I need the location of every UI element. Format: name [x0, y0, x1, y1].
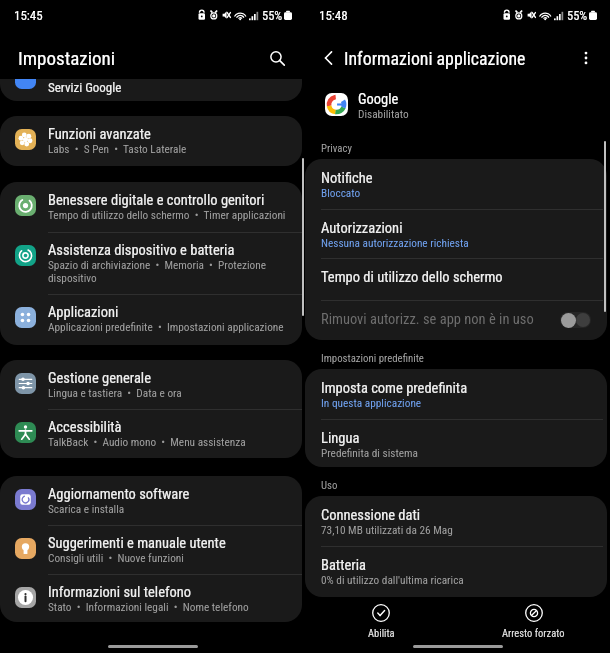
button[interactable]: Autorizzazioni [305, 209, 607, 258]
staticText: Notifiche [321, 170, 373, 187]
staticText: Accessibilità [48, 419, 122, 436]
staticText: Informazioni applicazione [344, 48, 526, 69]
staticText: Disabilitato [358, 108, 409, 121]
staticText: 15:45 [14, 8, 43, 23]
staticText: Tempo di utilizzo dello schermo [321, 269, 503, 286]
staticText: Spazio di archiviazione • Memoria • Prot… [48, 259, 266, 272]
staticText: Consigli utili • Nuove funzioni [48, 552, 184, 565]
staticText: Lingua e tastiera • Data e ora [48, 387, 182, 400]
staticText: Batteria [321, 557, 366, 574]
staticText: Funzioni avanzate [48, 126, 151, 143]
staticText: Gestione generale [48, 370, 151, 387]
button[interactable]: Benessere digitale e controllo genitori [0, 182, 302, 232]
button[interactable]: Informazioni sul telefono [0, 574, 302, 622]
staticText: Servizi Google [48, 80, 122, 95]
button[interactable]: Lingua [305, 419, 607, 467]
button[interactable]: Altre opzioni [574, 46, 598, 70]
button[interactable]: Gestione generale [0, 360, 302, 409]
button[interactable]: Servizi Google [0, 79, 302, 101]
staticText: Abilita [368, 627, 395, 639]
staticText: Autorizzazioni [321, 220, 403, 237]
staticText: Suggerimenti e manuale utente [48, 535, 226, 552]
staticText: Impostazioni [18, 47, 116, 69]
button[interactable]: Assistenza dispositivo e batteria [0, 232, 302, 294]
staticText: 55% [567, 8, 588, 23]
button[interactable]: Suggerimenti e manuale utente [0, 525, 302, 574]
staticText: Assistenza dispositivo e batteria [48, 242, 235, 259]
staticText: Arresto forzato [502, 627, 565, 639]
staticText: dispositivo [48, 272, 97, 285]
staticText: Applicazioni predefinite • Impostazioni … [48, 321, 284, 334]
staticText: Predefinita di sistema [321, 447, 418, 460]
button[interactable]: Cerca [264, 45, 290, 71]
staticText: Aggiornamento software [48, 486, 190, 503]
staticText: Impostazioni predefinite [321, 352, 424, 365]
staticText: In questa applicazione [321, 397, 422, 410]
staticText: Applicazioni [48, 304, 119, 321]
button[interactable]: Applicazioni [0, 294, 302, 345]
staticText: 0% di utilizzo dall'ultima ricarica [321, 574, 464, 587]
button[interactable]: Batteria [305, 546, 607, 597]
staticText: Tempo di utilizzo dello schermo • Timer … [48, 209, 286, 222]
button[interactable]: Notifiche [305, 159, 607, 209]
staticText: Lingua [321, 430, 360, 447]
staticText: 55% [262, 8, 283, 23]
button[interactable]: Interruttore [560, 312, 591, 328]
button[interactable]: Indietro [316, 45, 342, 71]
staticText: Privacy [321, 142, 352, 155]
button[interactable]: Accessibilità [0, 409, 302, 458]
staticText: Imposta come predefinita [321, 380, 468, 397]
staticText: Rimuovi autorizz. se app non è in uso [321, 311, 534, 328]
staticText: Labs • S Pen • Tasto Laterale [48, 143, 187, 156]
staticText: Informazioni sul telefono [48, 584, 192, 601]
button[interactable]: Connessione dati [305, 496, 607, 546]
button[interactable]: Funzioni avanzate [0, 116, 302, 166]
staticText: Connessione dati [321, 507, 421, 524]
staticText: 73,10 MB utilizzati da 26 Mag [321, 524, 453, 537]
button[interactable]: Aggiornamento software [0, 476, 302, 525]
staticText: TalkBack • Audio mono • Menu assistenza [48, 436, 246, 449]
button[interactable]: Abilita [305, 598, 457, 644]
button[interactable]: Rimuovi autorizz. se app non è in uso [305, 300, 607, 340]
staticText: Scarica e installa [48, 503, 125, 516]
button[interactable]: Arresto forzato [457, 598, 610, 644]
staticText: Nessuna autorizzazione richiesta [321, 237, 469, 250]
staticText: Uso [321, 479, 338, 492]
staticText: 15:48 [319, 8, 348, 23]
staticText: Benessere digitale e controllo genitori [48, 192, 265, 209]
button[interactable]: Imposta come predefinita [305, 369, 607, 419]
staticText: Google [358, 91, 399, 108]
staticText: Bloccato [321, 187, 361, 200]
staticText: Stato • Informazioni legali • Nome telef… [48, 601, 249, 614]
button[interactable]: Tempo di utilizzo dello schermo [305, 258, 607, 300]
